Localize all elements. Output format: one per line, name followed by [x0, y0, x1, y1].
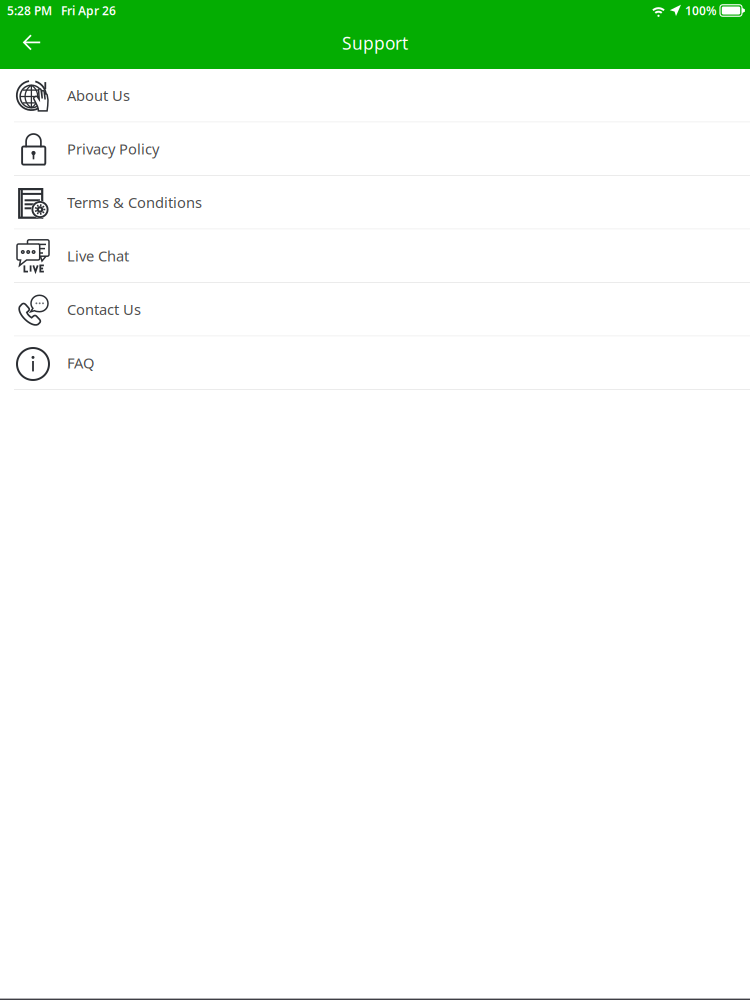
- button[interactable]: Back: [0, 25, 57, 65]
- staticText: Live Chat: [67, 246, 129, 266]
- staticText: About Us: [67, 86, 130, 105]
- staticText: Support: [342, 31, 408, 54]
- staticText: 100%: [685, 2, 717, 18]
- button[interactable]: Terms & Conditions: [0, 176, 750, 229]
- staticText: Terms & Conditions: [67, 193, 202, 212]
- staticText: Contact Us: [67, 300, 141, 319]
- button[interactable]: Privacy Policy: [0, 122, 750, 176]
- button[interactable]: About Us: [0, 69, 750, 122]
- button[interactable]: FAQ: [0, 336, 750, 390]
- staticText: Privacy Policy: [67, 139, 159, 159]
- staticText: Fri Apr 26: [61, 2, 116, 18]
- staticText: 5:28 PM: [7, 2, 52, 18]
- button[interactable]: Live Chat: [0, 229, 750, 283]
- button[interactable]: Contact Us: [0, 283, 750, 336]
- staticText: FAQ: [67, 353, 94, 373]
